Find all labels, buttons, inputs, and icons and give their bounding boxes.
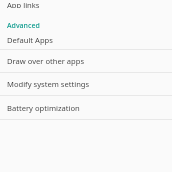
button[interactable]: Battery optimization (0, 96, 172, 119)
staticText: Battery optimization (7, 103, 80, 113)
button[interactable]: Default Apps (0, 31, 172, 49)
button[interactable]: App links (0, 0, 172, 8)
staticText: Default Apps (7, 35, 53, 45)
staticText: App links (7, 0, 40, 8)
button[interactable]: Modify system settings (0, 73, 172, 95)
staticText: Modify system settings (7, 79, 90, 89)
staticText: Draw over other apps (7, 56, 85, 66)
button[interactable]: Draw over other apps (0, 50, 172, 72)
staticText: Advanced (7, 21, 40, 31)
